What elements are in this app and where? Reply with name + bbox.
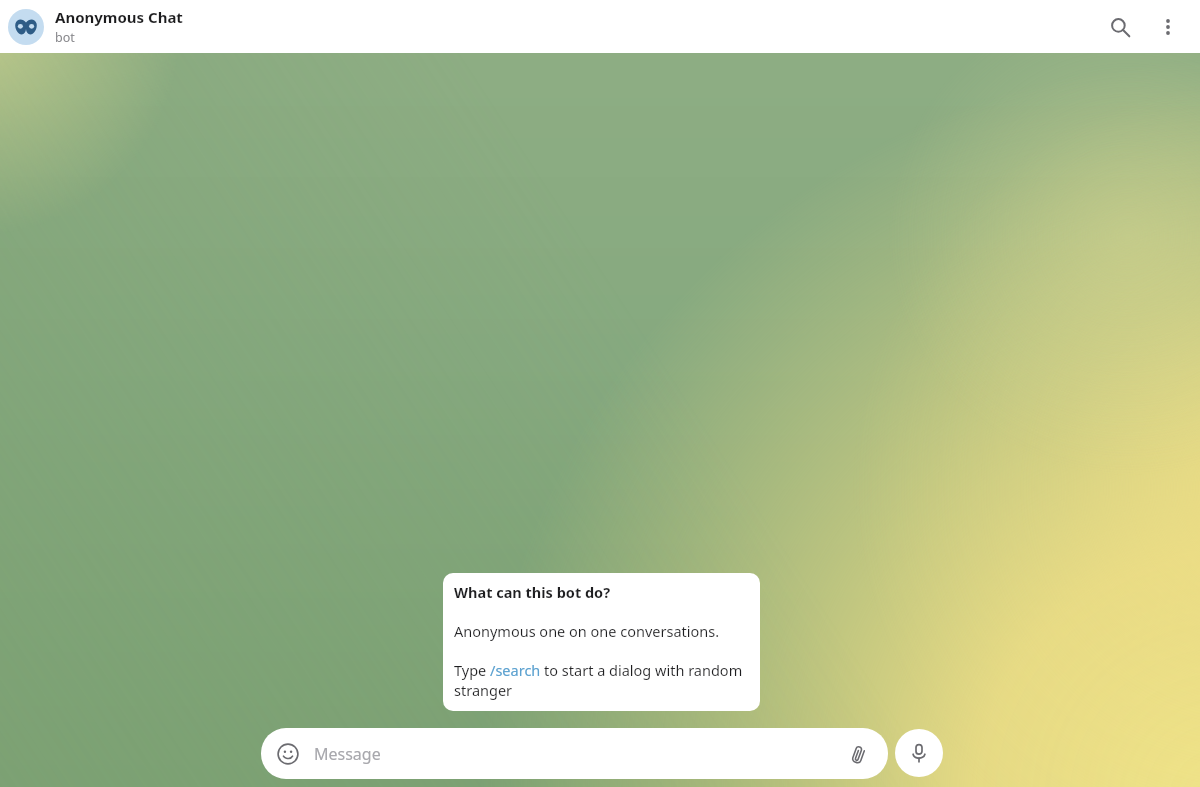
button[interactable]: Attach file <box>839 735 877 773</box>
button[interactable]: Record voice message <box>895 729 943 777</box>
button[interactable]: What can this bot do? <box>443 573 760 711</box>
button[interactable]: More options <box>1144 3 1192 51</box>
button[interactable]: Search <box>1096 3 1144 51</box>
button[interactable]: Emoji <box>273 739 303 769</box>
staticText: Anonymous Chat <box>55 7 183 27</box>
staticText: Anonymous one on one conversations. <box>454 621 720 641</box>
staticText: Message <box>314 743 839 765</box>
staticText: bot <box>55 29 75 46</box>
button[interactable]: Chat avatar <box>8 9 44 45</box>
staticText: Type /search to start a dialog with rand… <box>454 660 749 700</box>
staticText: What can this bot do? <box>454 582 611 602</box>
button[interactable]: Anonymous Chat <box>55 7 1096 46</box>
button[interactable]: Emoji <box>261 728 888 779</box>
